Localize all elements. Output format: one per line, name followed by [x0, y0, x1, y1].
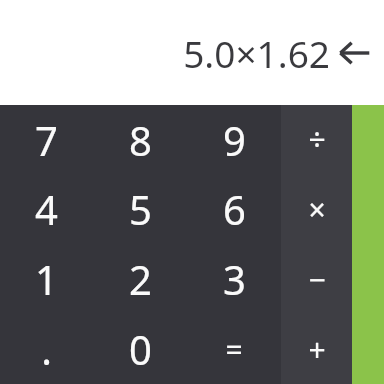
- button[interactable]: 0: [93, 314, 187, 384]
- staticText: ×: [308, 189, 326, 230]
- staticText: .: [41, 322, 52, 376]
- staticText: 3: [223, 252, 246, 306]
- staticText: ÷: [308, 119, 326, 160]
- button[interactable]: 4: [0, 174, 93, 244]
- button[interactable]: 5: [93, 174, 187, 244]
- button[interactable]: 8: [93, 105, 187, 174]
- button[interactable]: Add: [281, 314, 352, 384]
- staticText: 1: [35, 252, 58, 306]
- button[interactable]: Subtract: [281, 244, 352, 314]
- button[interactable]: Multiply: [281, 174, 352, 244]
- staticText: −: [308, 259, 326, 300]
- button[interactable]: 9: [187, 105, 281, 174]
- staticText: 7: [35, 113, 58, 167]
- button[interactable]: Backspace: [332, 31, 376, 75]
- staticText: +: [308, 329, 326, 370]
- staticText: 4: [35, 182, 58, 236]
- button[interactable]: 5.0×1.62: [183, 28, 330, 78]
- button[interactable]: 2: [93, 244, 187, 314]
- button[interactable]: 7: [0, 105, 93, 174]
- staticText: 5.0×1.62: [183, 28, 330, 78]
- staticText: 8: [129, 113, 152, 167]
- button[interactable]: =: [187, 314, 281, 384]
- staticText: 0: [129, 322, 152, 376]
- staticText: 9: [223, 113, 246, 167]
- button[interactable]: 1: [0, 244, 93, 314]
- button[interactable]: 6: [187, 174, 281, 244]
- staticText: 5: [129, 182, 152, 236]
- staticText: =: [225, 329, 243, 370]
- staticText: 6: [223, 182, 246, 236]
- staticText: 2: [129, 252, 152, 306]
- button[interactable]: .: [0, 314, 93, 384]
- button[interactable]: Divide: [281, 105, 352, 174]
- button[interactable]: 3: [187, 244, 281, 314]
